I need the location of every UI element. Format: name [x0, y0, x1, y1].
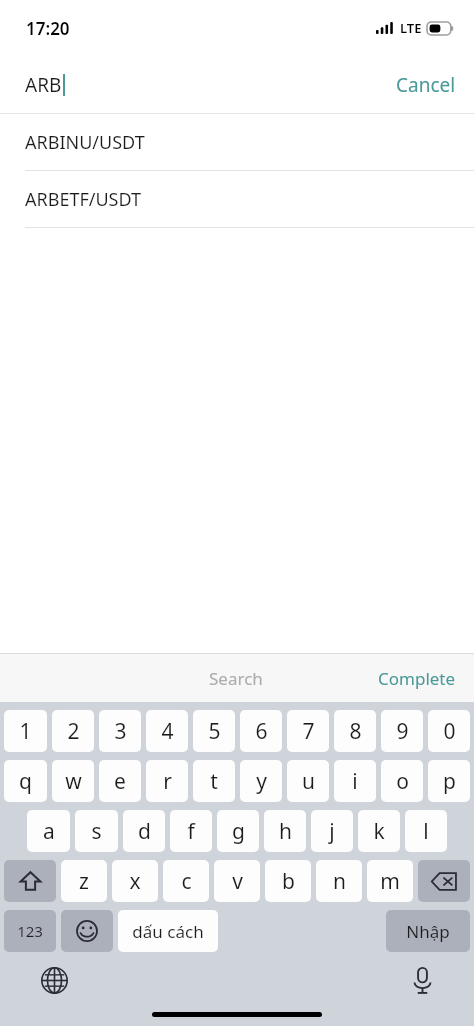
button[interactable]: 5: [193, 710, 235, 752]
button[interactable]: ARBINU/USDT: [0, 114, 474, 170]
staticText: 9: [396, 717, 409, 746]
staticText: 3: [114, 717, 127, 746]
staticText: u: [302, 767, 315, 796]
button[interactable]: Shift: [4, 860, 56, 902]
staticText: j: [329, 817, 335, 846]
staticText: c: [181, 867, 192, 896]
button[interactable]: g: [217, 810, 259, 852]
button[interactable]: w: [52, 760, 94, 802]
staticText: 17:20: [26, 17, 70, 40]
staticText: 1: [19, 717, 32, 746]
staticText: i: [352, 767, 358, 796]
staticText: s: [91, 817, 102, 846]
button[interactable]: Change keyboard language: [34, 960, 74, 1000]
button[interactable]: Dictation: [402, 960, 442, 1000]
staticText: ARB: [25, 72, 62, 98]
staticText: b: [282, 867, 295, 896]
button[interactable]: x: [112, 860, 158, 902]
button[interactable]: e: [99, 760, 141, 802]
staticText: n: [333, 867, 346, 896]
button[interactable]: ARBETF/USDT: [0, 171, 474, 227]
staticText: r: [163, 767, 172, 796]
staticText: k: [373, 817, 385, 846]
button[interactable]: l: [405, 810, 447, 852]
button[interactable]: u: [287, 760, 329, 802]
button[interactable]: q: [4, 760, 47, 802]
button[interactable]: a: [27, 810, 70, 852]
button[interactable]: 8: [334, 710, 376, 752]
button[interactable]: 3: [99, 710, 141, 752]
button[interactable]: z: [61, 860, 107, 902]
staticText: 7: [302, 717, 315, 746]
button[interactable]: i: [334, 760, 376, 802]
button[interactable]: j: [311, 810, 353, 852]
button[interactable]: b: [265, 860, 311, 902]
staticText: 4: [161, 717, 174, 746]
button[interactable]: p: [428, 760, 470, 802]
staticText: LTE: [400, 19, 422, 37]
button[interactable]: f: [170, 810, 212, 852]
button[interactable]: 7: [287, 710, 329, 752]
button[interactable]: m: [367, 860, 413, 902]
staticText: 5: [208, 717, 221, 746]
staticText: 123: [17, 921, 43, 941]
button[interactable]: 123: [4, 910, 56, 952]
staticText: a: [43, 817, 55, 846]
staticText: m: [380, 867, 400, 896]
staticText: 0: [443, 717, 456, 746]
staticText: e: [114, 767, 126, 796]
staticText: t: [210, 767, 218, 796]
staticText: Cancel: [396, 72, 456, 98]
staticText: f: [187, 817, 195, 846]
button[interactable]: v: [214, 860, 260, 902]
staticText: g: [232, 817, 245, 846]
staticText: Nhập: [406, 920, 450, 943]
staticText: dấu cách: [132, 920, 204, 943]
button[interactable]: h: [264, 810, 306, 852]
staticText: 6: [255, 717, 268, 746]
button[interactable]: 9: [381, 710, 423, 752]
button[interactable]: 4: [146, 710, 188, 752]
button[interactable]: o: [381, 760, 423, 802]
button[interactable]: 2: [52, 710, 94, 752]
staticText: z: [79, 867, 89, 896]
staticText: w: [65, 767, 82, 796]
button[interactable]: r: [146, 760, 188, 802]
staticText: x: [129, 867, 141, 896]
staticText: v: [232, 867, 243, 896]
button[interactable]: d: [123, 810, 165, 852]
button[interactable]: 6: [240, 710, 282, 752]
staticText: Complete: [378, 667, 456, 690]
button[interactable]: y: [240, 760, 282, 802]
staticText: q: [19, 767, 32, 796]
button[interactable]: Complete: [360, 659, 474, 698]
staticText: ARBINU/USDT: [25, 130, 145, 155]
button[interactable]: 1: [4, 710, 47, 752]
button[interactable]: Emoji: [61, 910, 113, 952]
button[interactable]: k: [358, 810, 400, 852]
button[interactable]: s: [75, 810, 118, 852]
staticText: o: [396, 767, 409, 796]
staticText: ARBETF/USDT: [25, 187, 142, 212]
button[interactable]: Nhập: [386, 910, 470, 952]
button[interactable]: dấu cách: [118, 910, 218, 952]
staticText: Search: [209, 667, 263, 690]
staticText: y: [256, 767, 267, 796]
button[interactable]: Cancel: [378, 62, 474, 108]
button[interactable]: 0: [428, 710, 470, 752]
staticText: p: [443, 767, 456, 796]
staticText: d: [138, 817, 151, 846]
button[interactable]: c: [163, 860, 209, 902]
staticText: l: [423, 817, 429, 846]
button[interactable]: n: [316, 860, 362, 902]
button[interactable]: Backspace: [418, 860, 470, 902]
staticText: 2: [67, 717, 80, 746]
staticText: 8: [349, 717, 362, 746]
staticText: h: [279, 817, 292, 846]
button[interactable]: t: [193, 760, 235, 802]
